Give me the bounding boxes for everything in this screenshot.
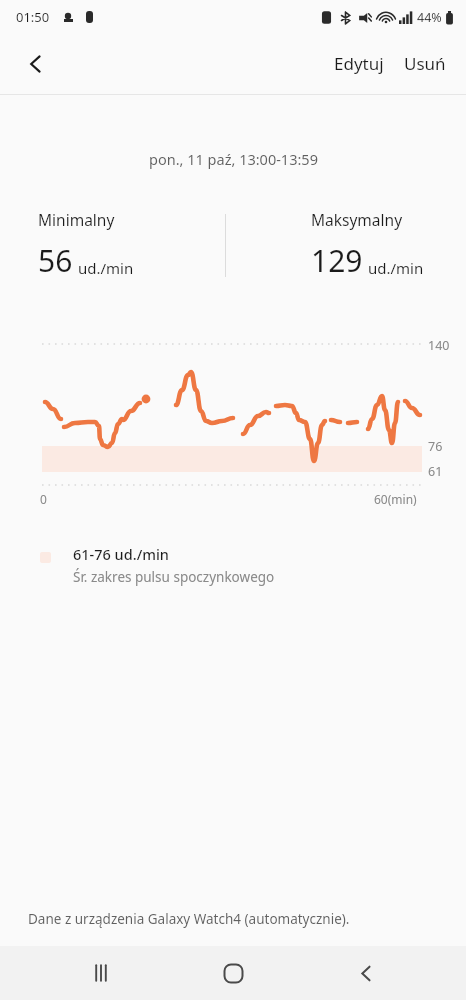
staticText: 129 bbox=[311, 240, 363, 281]
staticText: 0 bbox=[40, 491, 47, 507]
button[interactable]: Home bbox=[201, 946, 265, 1000]
staticText: Maksymalny bbox=[311, 209, 403, 230]
button[interactable]: Back bbox=[334, 946, 398, 1000]
staticText: Dane z urządzenia Galaxy Watch4 (automat… bbox=[28, 910, 350, 928]
staticText: ud./min bbox=[368, 258, 424, 278]
staticText: Edytuj bbox=[334, 52, 384, 75]
staticText: pon., 11 paź, 13:00-13:59 bbox=[149, 149, 318, 169]
staticText: Usuń bbox=[404, 52, 446, 75]
staticText: 76 bbox=[428, 438, 443, 455]
staticText: 56 bbox=[38, 240, 73, 281]
staticText: Śr. zakres pulsu spoczynkowego bbox=[73, 568, 275, 586]
staticText: 61 bbox=[428, 463, 443, 480]
staticText: 140 bbox=[428, 337, 450, 354]
button[interactable]: Back bbox=[12, 40, 60, 88]
staticText: ud./min bbox=[78, 258, 134, 278]
staticText: Minimalny bbox=[38, 209, 115, 230]
button[interactable]: Recent apps bbox=[69, 946, 133, 1000]
staticText: 01:50 bbox=[16, 8, 50, 26]
staticText: 61-76 ud./min bbox=[73, 544, 169, 564]
button[interactable]: Usuń bbox=[394, 42, 466, 85]
staticText: 60(min) bbox=[374, 491, 417, 507]
button[interactable]: Edytuj bbox=[324, 42, 394, 85]
staticText: 44% bbox=[417, 9, 442, 26]
